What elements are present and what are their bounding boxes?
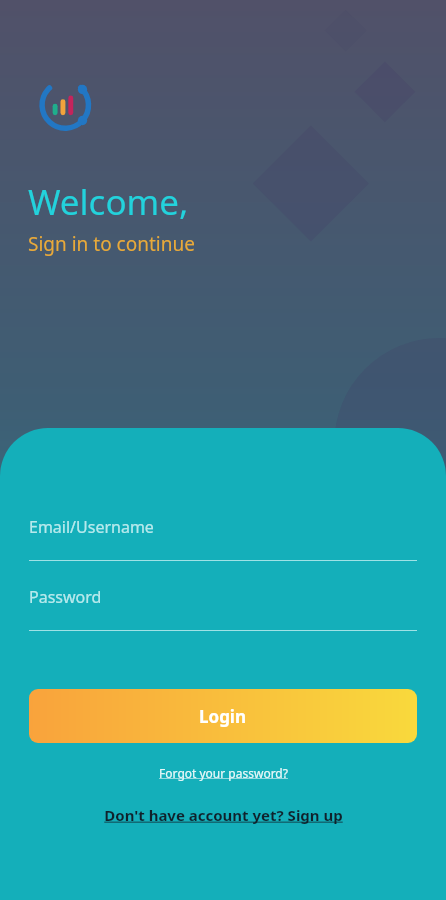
staticText: Sign in to continue xyxy=(28,231,195,257)
staticText: Forgot your password? xyxy=(159,765,288,781)
button[interactable]: Email/Username xyxy=(0,516,446,561)
staticText: Email/Username xyxy=(29,516,154,538)
staticText: Don't have account yet? Sign up xyxy=(104,805,343,825)
staticText: Welcome, xyxy=(28,178,189,226)
button[interactable]: Password xyxy=(0,586,446,631)
button[interactable]: Don't have account yet? Sign up xyxy=(96,801,351,829)
staticText: Login xyxy=(199,705,247,728)
staticText: Password xyxy=(29,586,102,608)
button[interactable]: Forgot your password? xyxy=(151,761,296,785)
button[interactable]: Login xyxy=(29,689,417,743)
